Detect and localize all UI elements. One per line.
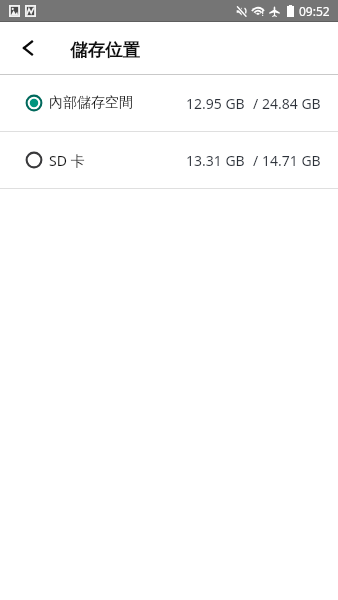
staticText: 內部儲存空間 [49,94,133,112]
button[interactable]: SD 卡 [0,132,338,188]
staticText: / [253,151,259,170]
staticText: 12.95 GB [186,94,245,113]
staticText: 24.84 GB [262,94,321,113]
staticText: / [253,94,259,113]
button[interactable]: 內部儲存空間 [0,75,338,131]
button[interactable]: Back [4,24,52,72]
staticText: 13.31 GB [186,151,245,170]
staticText: 儲存位置 [70,39,140,61]
staticText: 14.71 GB [262,151,321,170]
staticText: 09:52 [299,3,330,19]
staticText: SD 卡 [49,151,85,170]
